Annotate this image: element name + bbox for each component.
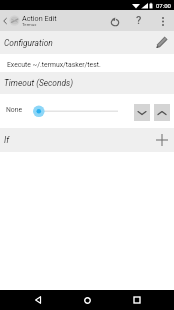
staticText: Termux [22,22,37,27]
staticText: Timeout (Seconds) [4,78,74,88]
staticText: If [4,135,10,145]
button[interactable]: Undo [105,10,124,31]
staticText: Action Edit [22,14,57,22]
button[interactable]: Edit configuration [154,33,174,53]
button[interactable]: Navigate up [1,10,8,31]
staticText: Configuration [4,38,53,48]
button[interactable]: Decrease timeout [134,104,150,121]
button[interactable]: Recent apps [125,290,149,310]
button[interactable]: Execute ~/.termux/tasker/test. [0,54,174,72]
button[interactable]: Home [75,290,99,310]
staticText: None [6,106,23,114]
button[interactable]: Add condition [152,129,174,151]
button[interactable]: Increase timeout [154,104,170,121]
button[interactable]: Configuration [0,31,174,54]
button[interactable]: More options [154,10,171,31]
staticText: ? [136,14,142,27]
staticText: Execute ~/.termux/tasker/test. [7,61,101,69]
button[interactable]: Help [129,10,148,31]
staticText: 07:00 [156,2,171,9]
button[interactable]: Back [26,290,50,310]
